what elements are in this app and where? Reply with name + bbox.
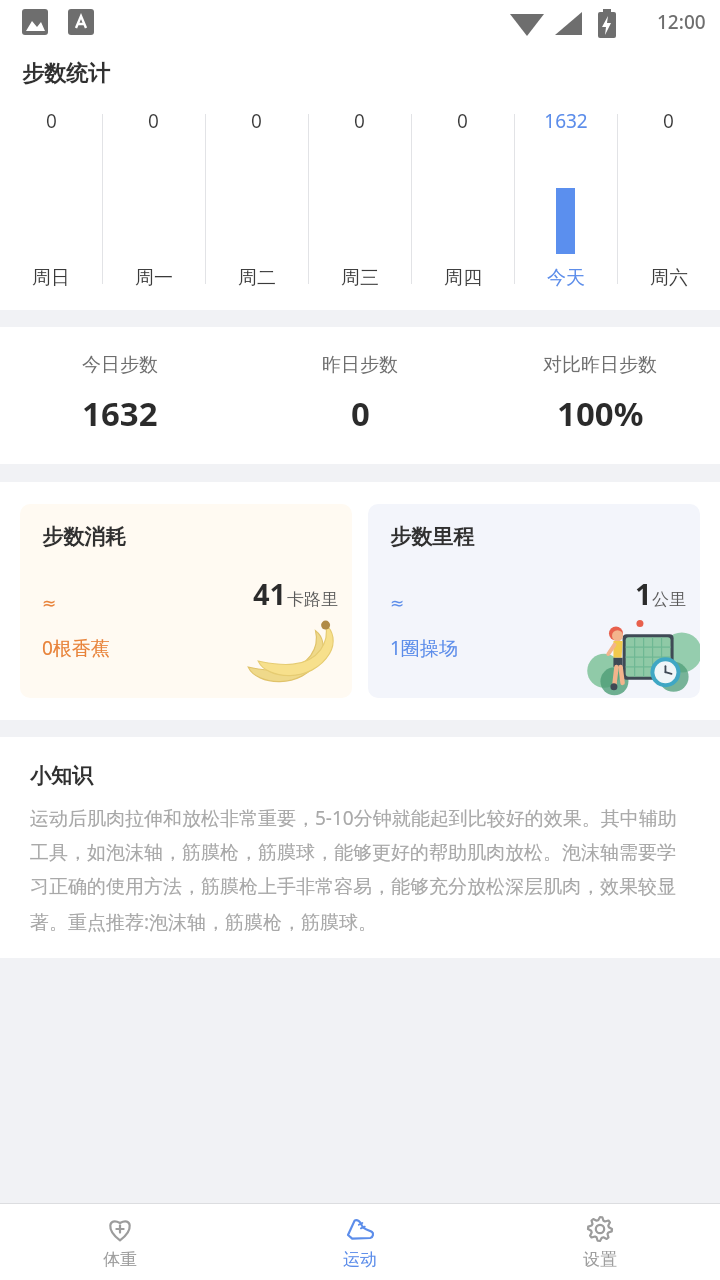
button[interactable]: 昨日步数 [240, 353, 480, 436]
staticText: 0 [148, 108, 159, 134]
button[interactable]: 体重 [0, 1204, 240, 1280]
staticText: 周日 [32, 266, 70, 290]
button[interactable]: 步数里程 [368, 504, 700, 698]
staticText: 昨日步数 [322, 353, 398, 377]
staticText: 对比昨日步数 [543, 353, 657, 377]
staticText: 周六 [650, 266, 688, 290]
staticText: 运动后肌肉拉伸和放松非常重要，5-10分钟就能起到比较好的效果。其中辅助工具，如… [30, 805, 690, 934]
staticText: 周一 [135, 266, 173, 290]
staticText: 今日步数 [82, 353, 158, 377]
other: 设置 [585, 1214, 615, 1244]
staticText: 步数里程 [390, 524, 474, 550]
staticText: 0 [663, 108, 674, 134]
staticText: ≈ [42, 593, 57, 613]
button[interactable]: 运动 [240, 1204, 480, 1280]
staticText: 12:00 [657, 9, 706, 35]
staticText: 41 [253, 574, 287, 613]
staticText: 步数统计 [22, 60, 110, 88]
staticText: 步数消耗 [42, 524, 126, 550]
staticText: 1632 [82, 391, 158, 436]
staticText: 周三 [341, 266, 379, 290]
staticText: 0 [457, 108, 468, 134]
staticText: 1圈操场 [390, 635, 458, 661]
staticText: 卡路里 [287, 589, 338, 610]
staticText: 周四 [444, 266, 482, 290]
other: 运动 [345, 1214, 375, 1244]
staticText: 1 [635, 574, 652, 613]
staticText: 设置 [583, 1249, 617, 1270]
staticText: 0 [351, 391, 370, 436]
staticText: 今天 [547, 266, 585, 290]
button[interactable]: 设置 [480, 1204, 720, 1280]
staticText: 体重 [103, 1249, 137, 1270]
staticText: 0根香蕉 [42, 635, 110, 661]
button[interactable]: 今日步数 [0, 353, 240, 436]
staticText: 1632 [544, 108, 588, 134]
button[interactable]: 对比昨日步数 [480, 353, 720, 436]
staticText: 公里 [652, 589, 686, 610]
staticText: 小知识 [30, 763, 93, 789]
button[interactable]: 步数消耗 [20, 504, 352, 698]
staticText: 0 [46, 108, 57, 134]
staticText: 周二 [238, 266, 276, 290]
staticText: 100% [557, 391, 644, 436]
staticText: 运动 [343, 1249, 377, 1270]
staticText: ≈ [390, 593, 405, 613]
staticText: 0 [251, 108, 262, 134]
staticText: 0 [354, 108, 365, 134]
other: 体重 [105, 1214, 135, 1244]
